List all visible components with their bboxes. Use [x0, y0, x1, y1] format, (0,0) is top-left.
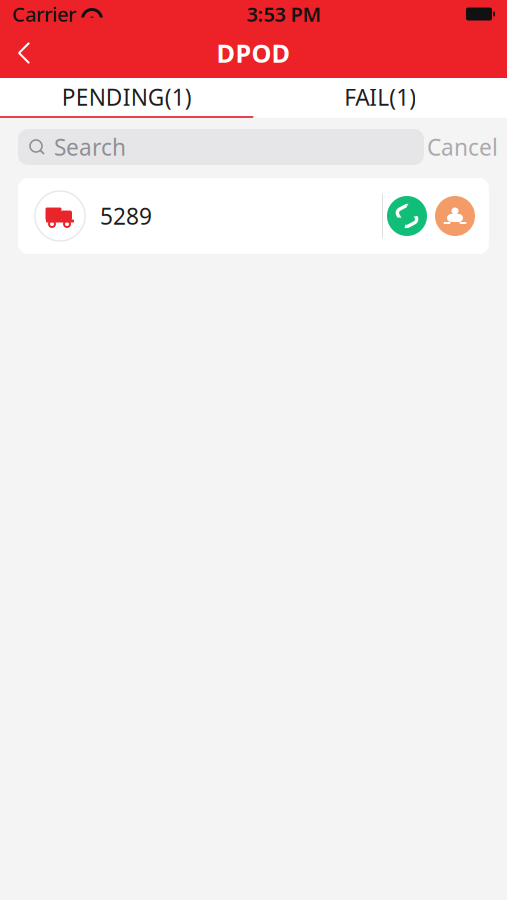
staticText: 5289 — [100, 201, 152, 231]
staticText: DPOD — [216, 36, 290, 70]
button[interactable]: Call — [383, 192, 431, 240]
button[interactable]: FAIL(1) — [253, 78, 507, 116]
button[interactable]: Cancel — [424, 129, 501, 165]
staticText: FAIL(1) — [344, 82, 416, 112]
staticText: 3:53 PM — [246, 1, 321, 27]
button[interactable]: View on map — [431, 192, 479, 240]
staticText: Carrier — [12, 1, 76, 27]
button[interactable]: PENDING(1) — [0, 78, 253, 116]
staticText: Cancel — [427, 132, 498, 162]
button[interactable]: 5289 — [18, 178, 489, 254]
button[interactable]: Back — [0, 28, 48, 78]
staticText: PENDING(1) — [62, 82, 192, 112]
staticText: Search — [54, 132, 126, 162]
